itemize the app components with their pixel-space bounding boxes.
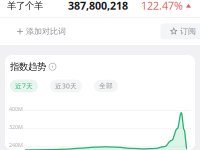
staticText: 122.47% xyxy=(141,0,183,13)
button[interactable]: 全部 xyxy=(94,80,118,92)
staticText: 指数趋势 xyxy=(10,61,46,72)
staticText: 添加对比词 xyxy=(26,26,66,36)
button[interactable]: 近30天 xyxy=(50,79,82,92)
button[interactable]: 添加对比词 xyxy=(13,21,70,41)
staticText: 羊了个羊 xyxy=(7,0,43,11)
staticText: 400M xyxy=(9,105,23,112)
staticText: 近7天 xyxy=(15,81,33,90)
staticText: 订阅 xyxy=(180,26,196,36)
staticText: 320M xyxy=(9,123,23,130)
staticText: 全部 xyxy=(99,82,113,90)
button[interactable]: 近7天 xyxy=(10,79,38,92)
staticText: 240M xyxy=(9,141,23,149)
button[interactable]: 订阅 xyxy=(160,23,200,39)
staticText: 近30天 xyxy=(55,81,77,90)
staticText: 387,800,218 xyxy=(68,0,128,13)
